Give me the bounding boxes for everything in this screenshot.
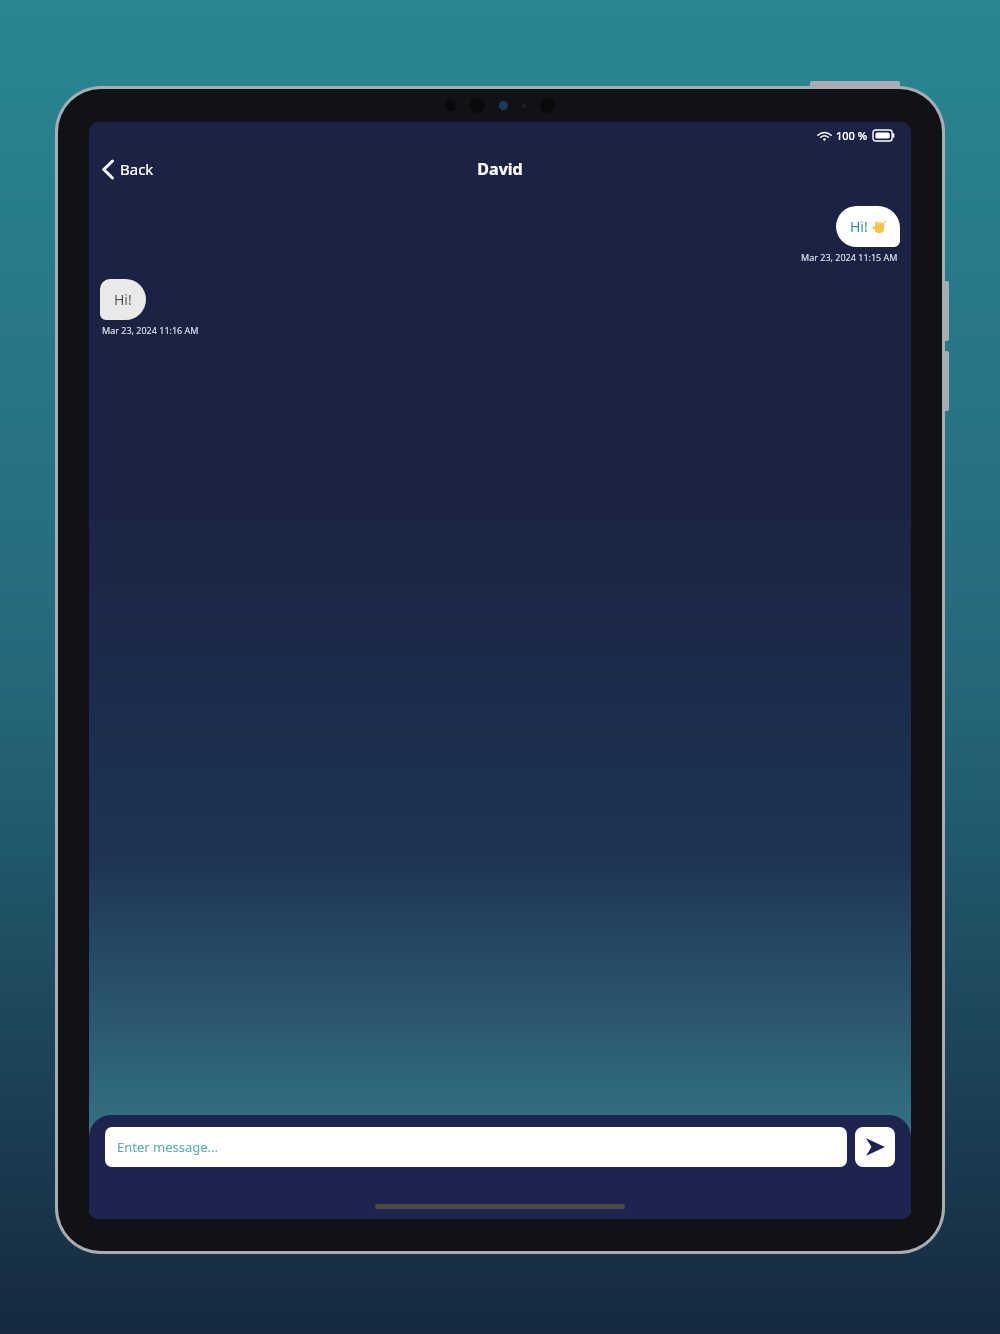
button[interactable]: Hi! bbox=[100, 279, 146, 320]
staticText: Mar 23, 2024 11:16 AM bbox=[102, 324, 199, 336]
staticText: Mar 23, 2024 11:15 AM bbox=[801, 251, 898, 263]
staticText: 100 % bbox=[836, 128, 868, 143]
staticText: Enter message... bbox=[117, 1138, 219, 1156]
button[interactable]: Back bbox=[89, 153, 168, 185]
button[interactable]: Enter message... bbox=[105, 1127, 847, 1167]
staticText: Hi! bbox=[114, 290, 132, 309]
button[interactable]: Hi! bbox=[836, 206, 900, 247]
button[interactable]: Send bbox=[855, 1127, 895, 1167]
staticText: David bbox=[477, 158, 523, 180]
staticText: Hi! bbox=[850, 217, 868, 236]
staticText: Back bbox=[120, 159, 154, 179]
